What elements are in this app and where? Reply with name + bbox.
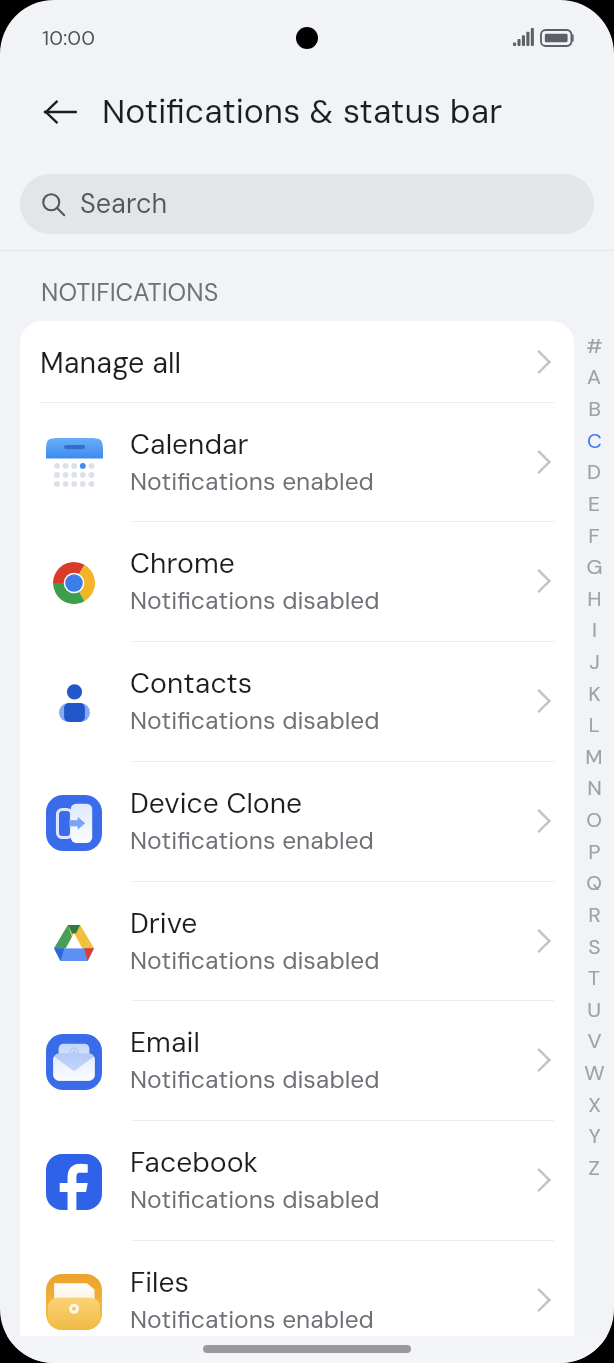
button[interactable]: Drive xyxy=(20,881,574,1001)
staticText: R xyxy=(588,901,601,922)
staticText: Notifications disabled xyxy=(130,585,380,617)
staticText: Chrome xyxy=(130,545,235,582)
button[interactable]: Contacts xyxy=(20,641,574,761)
staticText: J xyxy=(589,648,600,669)
staticText: D xyxy=(587,458,601,479)
staticText: Email xyxy=(130,1024,200,1061)
staticText: Search xyxy=(80,186,168,221)
staticText: Drive xyxy=(130,905,198,942)
staticText: Facebook xyxy=(130,1144,258,1181)
staticText: A xyxy=(587,363,601,384)
button[interactable]: Email xyxy=(20,1000,574,1120)
staticText: Device Clone xyxy=(130,785,303,822)
staticText: H xyxy=(587,585,602,606)
staticText: Z xyxy=(588,1154,600,1175)
staticText: Notifications enabled xyxy=(130,466,374,498)
staticText: I xyxy=(592,616,597,637)
staticText: P xyxy=(588,838,601,859)
button[interactable]: Back xyxy=(36,88,84,136)
staticText: NOTIFICATIONS xyxy=(41,276,219,309)
staticText: Q xyxy=(586,869,602,890)
staticText: Calendar xyxy=(130,426,249,463)
staticText: M xyxy=(585,743,603,764)
staticText: X xyxy=(588,1091,601,1112)
button[interactable]: Calendar xyxy=(20,402,574,522)
staticText: F xyxy=(588,522,600,543)
staticText: # xyxy=(586,332,603,353)
staticText: Notifications disabled xyxy=(130,1064,380,1096)
staticText: N xyxy=(587,774,602,795)
staticText: T xyxy=(588,964,600,985)
staticText: Notifications enabled xyxy=(130,825,374,857)
staticText: V xyxy=(587,1027,602,1048)
staticText: U xyxy=(587,996,601,1017)
staticText: Notifications disabled xyxy=(130,945,380,977)
staticText: Contacts xyxy=(130,665,253,702)
staticText: Notifications enabled xyxy=(130,1304,374,1336)
staticText: Notifications disabled xyxy=(130,705,380,737)
button[interactable]: Device Clone xyxy=(20,761,574,881)
staticText: L xyxy=(588,711,600,732)
staticText: Notifications disabled xyxy=(130,1184,380,1216)
button[interactable]: Search xyxy=(20,174,594,234)
staticText: S xyxy=(588,933,601,954)
button[interactable]: Chrome xyxy=(20,521,574,641)
staticText: W xyxy=(584,1059,605,1080)
staticText: C xyxy=(587,427,602,448)
staticText: G xyxy=(586,553,603,574)
button[interactable]: Manage all xyxy=(20,321,574,402)
staticText: 10:00 xyxy=(42,24,95,51)
staticText: E xyxy=(588,490,600,511)
button[interactable]: # xyxy=(574,321,614,1201)
staticText: Y xyxy=(588,1122,601,1143)
staticText: B xyxy=(588,395,601,416)
staticText: Manage all xyxy=(40,344,182,381)
staticText: K xyxy=(588,680,601,701)
button[interactable]: Files xyxy=(20,1240,574,1336)
staticText: Notifications & status bar xyxy=(102,90,503,134)
staticText: Files xyxy=(130,1264,189,1301)
button[interactable]: Facebook xyxy=(20,1120,574,1240)
staticText: O xyxy=(586,806,602,827)
